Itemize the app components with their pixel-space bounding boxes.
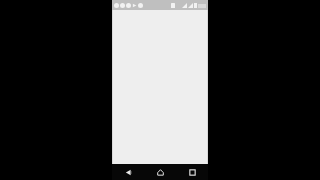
- button[interactable]: Recent apps: [176, 164, 208, 180]
- button[interactable]: Back: [112, 164, 144, 180]
- button[interactable]: Home: [144, 164, 176, 180]
